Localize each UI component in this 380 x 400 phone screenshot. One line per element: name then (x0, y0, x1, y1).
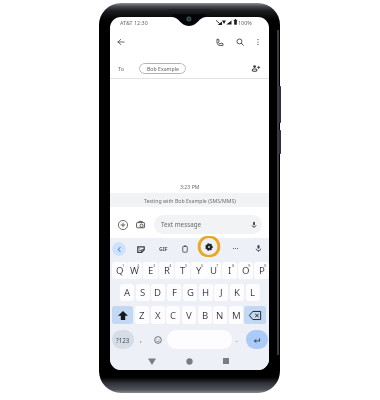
staticText: U (210, 264, 218, 277)
staticText: 8 (232, 263, 235, 269)
staticText: Y (196, 264, 202, 277)
button[interactable]: Home (181, 353, 197, 369)
button[interactable]: F (167, 284, 181, 301)
button[interactable]: I (222, 262, 237, 279)
staticText: H (202, 286, 210, 299)
staticText: P (259, 264, 265, 277)
button[interactable]: U (206, 262, 221, 279)
button[interactable]: D (151, 284, 165, 301)
staticText: M (232, 309, 241, 322)
staticText: I (228, 264, 232, 277)
button[interactable]: Call (211, 34, 227, 50)
staticText: R (164, 264, 170, 277)
staticText: 0 (264, 263, 267, 269)
staticText: 9 (248, 263, 251, 269)
button[interactable]: H (199, 284, 213, 301)
button[interactable]: Expand (112, 242, 126, 256)
staticText: ?123 (116, 336, 130, 344)
staticText: W (130, 264, 139, 277)
staticText: C (170, 309, 177, 322)
staticText: , (140, 335, 142, 344)
button[interactable] (167, 330, 232, 349)
button[interactable]: S (136, 284, 150, 301)
staticText: 3 (153, 263, 156, 269)
staticText: Z (139, 309, 145, 322)
button[interactable]: N (213, 306, 227, 324)
button[interactable]: Clipboard (178, 242, 191, 255)
staticText: 6 (201, 263, 204, 269)
staticText: Text message (161, 220, 202, 229)
button[interactable]: Text message (154, 215, 262, 234)
button[interactable]: . (231, 330, 243, 349)
button[interactable]: Add contact (247, 60, 263, 76)
staticText: Texting with Bob Example (SMS/MMS) (144, 197, 236, 204)
button[interactable]: L (246, 284, 260, 301)
staticText: V (186, 309, 192, 322)
staticText: 4 (169, 263, 172, 269)
staticText: O (242, 264, 250, 277)
button[interactable]: Stickers (134, 242, 147, 255)
button[interactable]: J (214, 284, 228, 301)
button[interactable] (246, 330, 268, 349)
button[interactable]: A (120, 284, 134, 301)
button[interactable]: ?123 (112, 330, 134, 349)
button[interactable]: Z (135, 306, 149, 324)
staticText: S (140, 286, 146, 299)
button[interactable]: M (229, 306, 243, 324)
staticText: 3:23 PM (180, 183, 200, 190)
button[interactable]: Recents (218, 353, 234, 369)
button[interactable] (112, 306, 133, 324)
staticText: B (202, 309, 209, 322)
button[interactable]: Back (144, 353, 160, 369)
button[interactable]: P (254, 262, 269, 279)
staticText: E (148, 264, 154, 277)
button[interactable]: Y (191, 262, 206, 279)
button[interactable]: E (143, 262, 158, 279)
staticText: 100% (238, 19, 252, 26)
button[interactable]: Bob Example (139, 63, 186, 74)
button[interactable]: X (151, 306, 165, 324)
button[interactable]: C (166, 306, 180, 324)
button[interactable]: W (127, 262, 142, 279)
staticText: 1 (122, 263, 125, 269)
button[interactable]: More options (229, 242, 242, 255)
staticText: 5 (185, 263, 188, 269)
staticText: GIF (159, 245, 168, 252)
button[interactable]: K (230, 284, 244, 301)
button[interactable]: Settings (196, 236, 222, 257)
button[interactable]: Voice input (252, 242, 265, 255)
button[interactable]: B (198, 306, 212, 324)
button[interactable]: More options (250, 34, 266, 50)
staticText: N (216, 309, 224, 322)
staticText: K (234, 286, 240, 299)
staticText: G (187, 286, 194, 299)
button[interactable]: Camera (133, 217, 149, 233)
button[interactable]: Search (232, 34, 248, 50)
button[interactable]: R (159, 262, 174, 279)
staticText: To (118, 65, 125, 73)
button[interactable]: GIF (157, 242, 170, 255)
button[interactable]: Add attachment (115, 217, 131, 233)
staticText: F (172, 286, 177, 299)
button[interactable]: V (182, 306, 196, 324)
staticText: D (154, 286, 162, 299)
button[interactable]: Q (112, 262, 127, 279)
button[interactable]: O (238, 262, 253, 279)
staticText: 7 (216, 263, 219, 269)
staticText: X (155, 309, 161, 322)
staticText: L (250, 286, 256, 299)
button[interactable]: G (183, 284, 197, 301)
staticText: A (124, 286, 131, 299)
staticText: Bob Example (147, 65, 179, 72)
staticText: . (236, 335, 238, 344)
button[interactable]: T (175, 262, 190, 279)
staticText: T (180, 264, 186, 277)
button[interactable] (244, 306, 266, 324)
staticText: Q (116, 264, 124, 277)
staticText: AT&T 12:30 (120, 19, 148, 26)
staticText: J (220, 286, 223, 299)
button[interactable]: , (135, 330, 147, 349)
staticText: 2 (137, 263, 140, 269)
button[interactable]: Back (113, 34, 129, 50)
button[interactable] (151, 330, 164, 349)
